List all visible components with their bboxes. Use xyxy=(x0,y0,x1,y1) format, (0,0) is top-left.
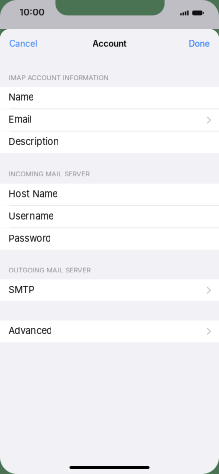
staticText: 10:00 xyxy=(20,7,45,18)
button[interactable]: Username xyxy=(0,206,219,228)
staticText: Account xyxy=(92,38,126,49)
button[interactable]: Cancel xyxy=(0,33,48,55)
button[interactable]: SMTP xyxy=(0,279,219,301)
staticText: Done xyxy=(189,38,210,49)
button[interactable]: Done xyxy=(175,33,219,55)
staticText: Password xyxy=(8,233,51,244)
button[interactable]: Email xyxy=(0,109,219,131)
staticText: SMTP xyxy=(8,284,34,295)
staticText: Username xyxy=(8,210,53,222)
staticText: OUTGOING MAIL SERVER xyxy=(8,266,90,274)
staticText: INCOMING MAIL SERVER xyxy=(8,170,89,178)
button[interactable]: Name xyxy=(0,87,219,109)
staticText: Host Name xyxy=(8,188,57,199)
staticText: Advanced xyxy=(8,325,52,336)
button[interactable]: Advanced xyxy=(0,320,219,342)
staticText: Cancel xyxy=(9,38,37,49)
staticText: Name xyxy=(8,91,33,103)
button[interactable]: Description xyxy=(0,132,219,153)
button[interactable]: Host Name xyxy=(0,184,219,205)
staticText: Description xyxy=(8,136,59,147)
staticText: IMAP ACCOUNT INFORMATION xyxy=(8,74,108,82)
staticText: Email xyxy=(8,114,31,125)
button[interactable]: Password xyxy=(0,228,219,250)
